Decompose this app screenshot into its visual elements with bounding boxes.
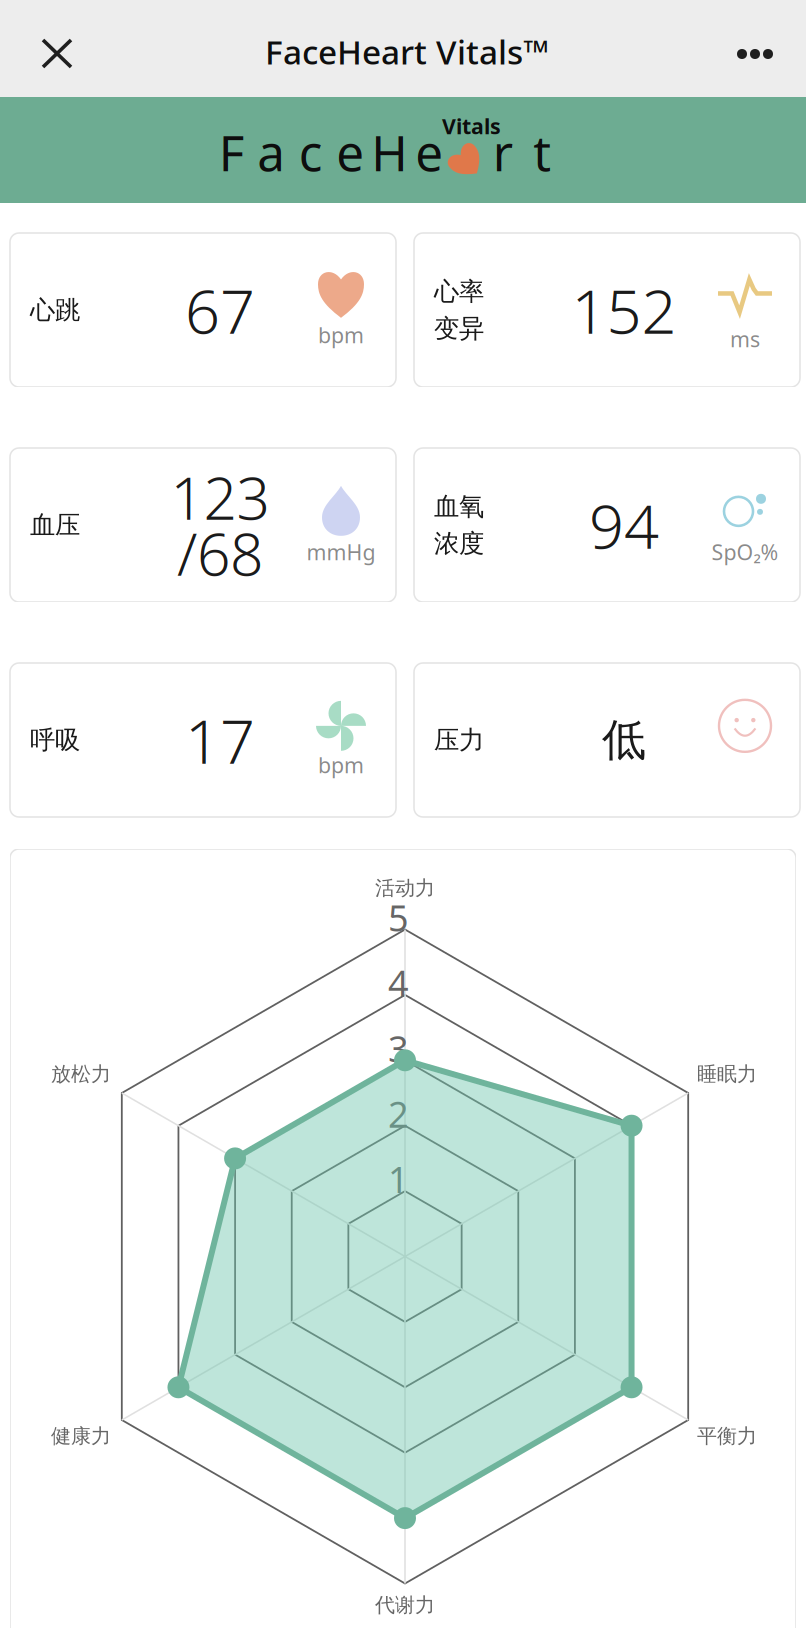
- button[interactable]: 压力: [414, 663, 800, 817]
- staticText: 变异: [434, 313, 484, 344]
- staticText: 心率: [434, 276, 484, 307]
- staticText: bpm: [318, 321, 364, 349]
- staticText: 5: [388, 894, 409, 941]
- button[interactable]: 血氧: [414, 448, 800, 602]
- staticText: 4: [388, 959, 409, 1007]
- staticText: mmHg: [306, 538, 375, 566]
- staticText: 放松力: [51, 1062, 111, 1086]
- staticText: 健康力: [51, 1424, 111, 1448]
- staticText: 代谢力: [375, 1593, 435, 1617]
- button[interactable]: 呼吸: [10, 663, 396, 817]
- staticText: t: [533, 119, 551, 185]
- staticText: H: [371, 119, 408, 185]
- staticText: Vitals: [442, 112, 501, 140]
- staticText: bpm: [318, 751, 364, 779]
- staticText: SpO₂%: [711, 538, 778, 566]
- staticText: 3: [388, 1024, 409, 1072]
- staticText: r: [493, 119, 513, 185]
- staticText: 67: [185, 269, 255, 351]
- staticText: /68: [177, 514, 263, 592]
- staticText: 血氧: [434, 491, 484, 522]
- staticText: 平衡力: [697, 1424, 757, 1448]
- staticText: c: [299, 119, 323, 185]
- staticText: ms: [730, 325, 760, 353]
- staticText: 17: [185, 699, 255, 781]
- staticText: 94: [589, 484, 659, 566]
- staticText: e: [336, 119, 364, 185]
- button[interactable]: More options: [715, 27, 795, 81]
- button[interactable]: Close: [21, 18, 93, 89]
- staticText: e: [415, 119, 443, 185]
- staticText: 血压: [30, 509, 80, 540]
- staticText: 2: [388, 1090, 409, 1138]
- staticText: 活动力: [375, 876, 435, 900]
- staticText: 152: [571, 269, 676, 351]
- staticText: a: [257, 119, 285, 185]
- staticText: 睡眠力: [697, 1062, 757, 1086]
- staticText: 123: [170, 458, 269, 536]
- staticText: 1: [388, 1155, 409, 1203]
- button[interactable]: 心跳: [10, 233, 396, 387]
- staticText: F: [219, 119, 245, 185]
- staticText: 浓度: [434, 528, 484, 559]
- staticText: 压力: [434, 724, 484, 755]
- button[interactable]: 血压: [10, 448, 396, 602]
- staticText: FaceHeart Vitals™: [265, 29, 549, 74]
- staticText: 呼吸: [30, 724, 80, 755]
- staticText: 心跳: [30, 294, 80, 325]
- button[interactable]: 心率: [414, 233, 800, 387]
- staticText: 低: [602, 713, 646, 767]
